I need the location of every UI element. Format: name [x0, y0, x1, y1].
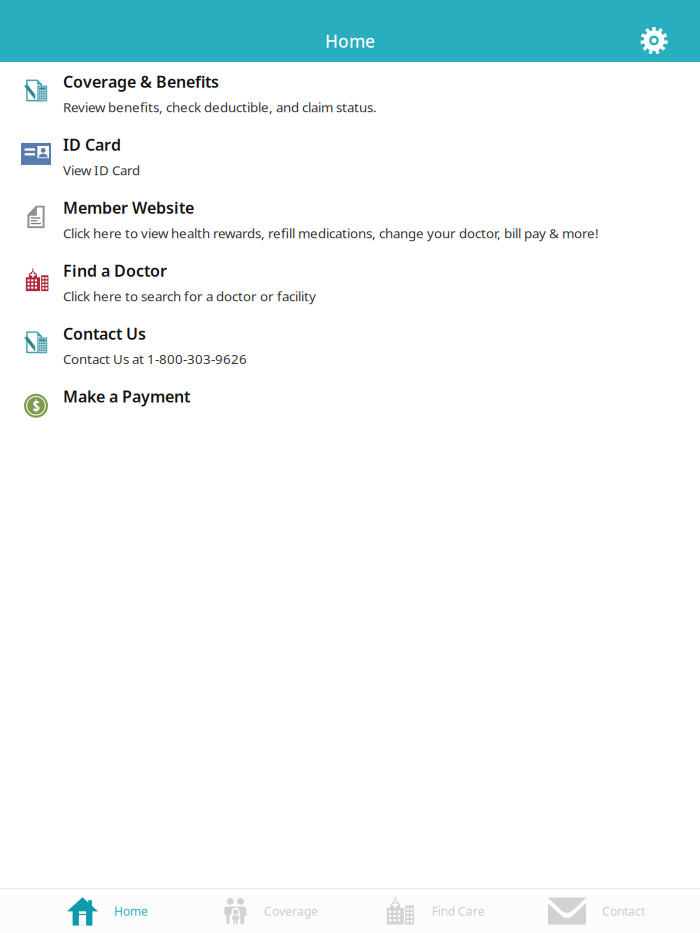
staticText: Review benefits, check deductible, and c…: [63, 98, 377, 116]
button[interactable]: Home: [26, 889, 189, 933]
staticText: ID Card: [63, 134, 121, 155]
button[interactable]: Contact Us: [0, 314, 700, 377]
staticText: View ID Card: [63, 161, 140, 179]
staticText: Contact Us: [63, 323, 146, 344]
button[interactable]: Coverage & Benefits: [0, 62, 700, 125]
button[interactable]: Contact: [515, 889, 678, 933]
staticText: S: [32, 397, 39, 415]
staticText: Click here to search for a doctor or fac…: [63, 287, 316, 305]
staticText: Coverage: [264, 903, 318, 919]
button[interactable]: Member Website: [0, 188, 700, 251]
button[interactable]: Coverage: [189, 889, 352, 933]
staticText: Make a Payment: [63, 386, 190, 407]
staticText: Find Care: [432, 903, 485, 919]
staticText: Click here to view health rewards, refil…: [63, 224, 599, 242]
staticText: Home: [325, 29, 375, 52]
button[interactable]: Find a Doctor: [0, 251, 700, 314]
staticText: Contact Us at 1-800-303-9626: [63, 350, 247, 368]
button[interactable]: Settings: [624, 0, 700, 71]
staticText: Home: [114, 903, 148, 919]
staticText: Contact: [602, 903, 645, 919]
button[interactable]: ID Card: [0, 125, 700, 188]
staticText: Find a Doctor: [63, 260, 167, 281]
button[interactable]: Find Care: [352, 889, 515, 933]
staticText: Coverage & Benefits: [63, 71, 219, 92]
staticText: Member Website: [63, 197, 194, 218]
button[interactable]: S: [0, 377, 700, 429]
